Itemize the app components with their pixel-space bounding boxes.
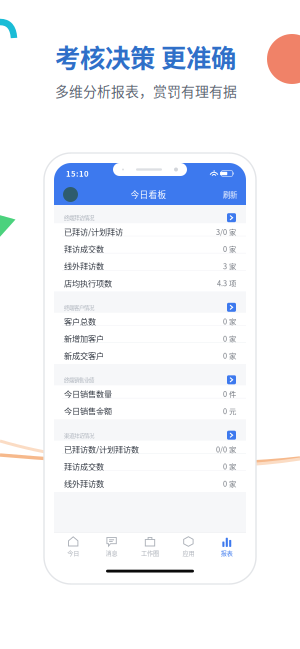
staticText: 0 家 (223, 333, 236, 344)
button[interactable]: 报表 (208, 535, 246, 559)
staticText: 0 元 (223, 406, 236, 416)
staticText: 4.3 项 (217, 278, 236, 288)
staticText: 拜访成交数 (64, 460, 104, 472)
staticText: 终端拜访情况 (64, 214, 94, 222)
staticText: 今日销售数量 (64, 388, 112, 400)
staticText: 3/0 家 (216, 226, 236, 237)
button[interactable]: 今日 (54, 535, 92, 559)
button[interactable]: 工作圈 (131, 535, 169, 559)
staticText: 0 家 (223, 461, 236, 472)
staticText: 消息 (106, 548, 118, 557)
staticText: 工作圈 (141, 548, 159, 557)
staticText: 终端客户情况 (64, 303, 94, 311)
staticText: 0 家 (223, 478, 236, 489)
staticText: 客户总数 (64, 315, 96, 327)
staticText: 0/0 家 (216, 444, 236, 454)
staticText: 渠道拜访情况 (64, 431, 94, 439)
staticText: 刷新 (223, 189, 237, 200)
staticText: 0 件 (223, 388, 236, 399)
staticText: 新成交客户 (64, 350, 104, 361)
staticText: 今日销售金额 (64, 405, 112, 417)
staticText: 报表 (221, 548, 233, 557)
button[interactable]: 消息 (92, 535, 131, 559)
staticText: 终端销售业绩 (64, 376, 94, 384)
staticText: 拜访成交数 (64, 243, 104, 255)
staticText: 今日看板 (130, 188, 166, 201)
button[interactable]: 应用 (169, 535, 208, 559)
staticText: 考核决策 更准确 (55, 38, 236, 75)
staticText: 3 家 (223, 261, 236, 271)
button[interactable]: 刷新 (219, 189, 237, 200)
staticText: 0 家 (223, 316, 236, 327)
staticText: 0 家 (223, 243, 236, 254)
staticText: 新增加客户 (64, 333, 104, 344)
staticText: 线外拜访数 (64, 260, 104, 272)
staticText: 线外拜访数 (64, 478, 104, 489)
staticText: 已拜访/计划拜访 (64, 226, 123, 238)
staticText: 多维分析报表，赏罚有理有据 (55, 81, 237, 101)
button[interactable]: 个人中心 (63, 187, 78, 202)
staticText: 已拜访数/计划拜访数 (64, 443, 139, 455)
staticText: 0 家 (223, 350, 236, 361)
staticText: 15:10 (66, 168, 89, 179)
staticText: 今日 (67, 548, 79, 557)
staticText: 店均执行项数 (64, 277, 112, 289)
staticText: 应用 (182, 548, 194, 557)
